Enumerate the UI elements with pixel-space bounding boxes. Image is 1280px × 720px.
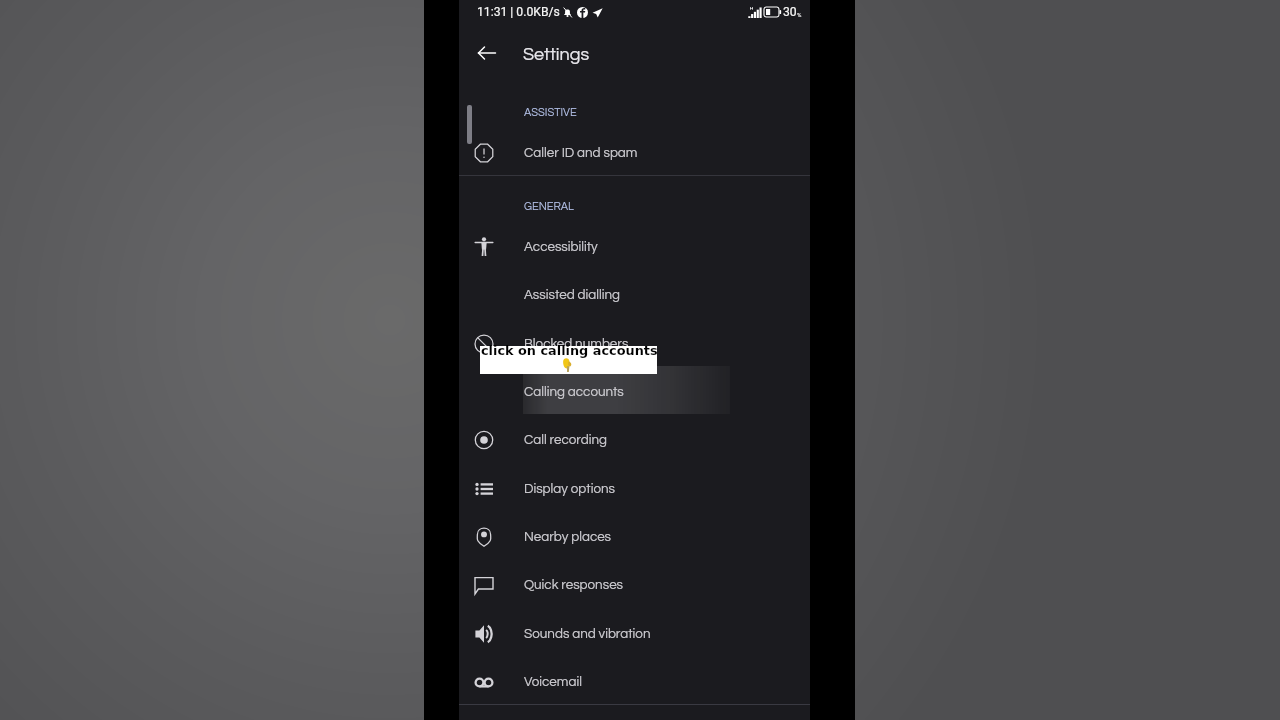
button[interactable]: Calling accounts <box>459 368 810 416</box>
button[interactable]: Assisted dialling <box>459 271 810 319</box>
button[interactable]: Display options <box>459 465 810 513</box>
staticText: Nearby places <box>524 530 612 544</box>
staticText: 11:31 | 0.0KB/s <box>477 5 560 19</box>
staticText: Assisted dialling <box>524 288 620 302</box>
button[interactable]: Quick responses <box>459 561 810 609</box>
staticText: click on calling accounts <box>481 343 658 358</box>
staticText: Sounds and vibration <box>524 627 651 641</box>
staticText: GENERAL <box>524 201 574 212</box>
button[interactable]: Caller ID and spam <box>459 129 810 177</box>
staticText: ASSISTIVE <box>524 107 577 118</box>
staticText: Quick responses <box>524 578 624 592</box>
staticText: Accessibility <box>524 240 598 254</box>
staticText: % <box>797 11 802 18</box>
button[interactable]: Nearby places <box>459 513 810 561</box>
staticText: Caller ID and spam <box>524 146 638 160</box>
staticText: Settings <box>523 45 590 64</box>
staticText: Voicemail <box>524 675 582 689</box>
staticText: Call recording <box>524 433 607 447</box>
button[interactable]: Accessibility <box>459 223 810 271</box>
staticText: Blocked numbers <box>524 337 629 351</box>
staticText: Display options <box>524 482 616 496</box>
button[interactable]: Call recording <box>459 416 810 464</box>
button[interactable]: Blocked numbers <box>459 320 810 368</box>
button[interactable]: Back <box>469 35 505 71</box>
staticText: Calling accounts <box>524 385 624 399</box>
staticText: 30 <box>783 5 797 19</box>
button[interactable]: Sounds and vibration <box>459 610 810 658</box>
button[interactable]: Voicemail <box>459 658 810 706</box>
